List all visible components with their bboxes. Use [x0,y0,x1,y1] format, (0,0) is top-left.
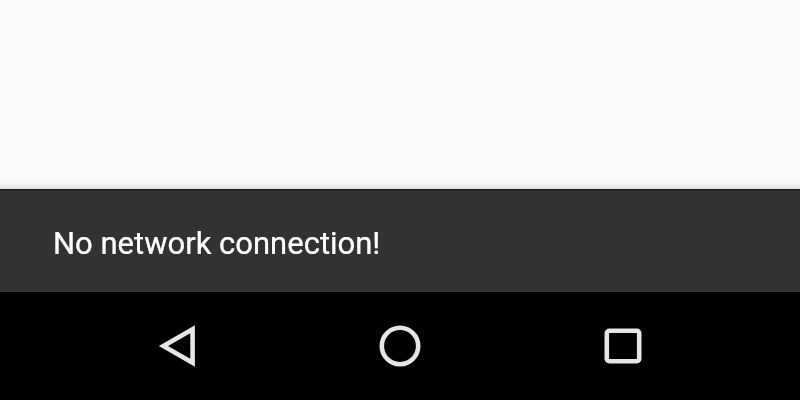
button[interactable]: Back [130,298,226,394]
button[interactable]: Recent apps [575,298,671,394]
button[interactable]: Home [352,298,448,394]
button[interactable]: No network connection! [0,189,800,292]
staticText: No network connection! [53,225,381,261]
